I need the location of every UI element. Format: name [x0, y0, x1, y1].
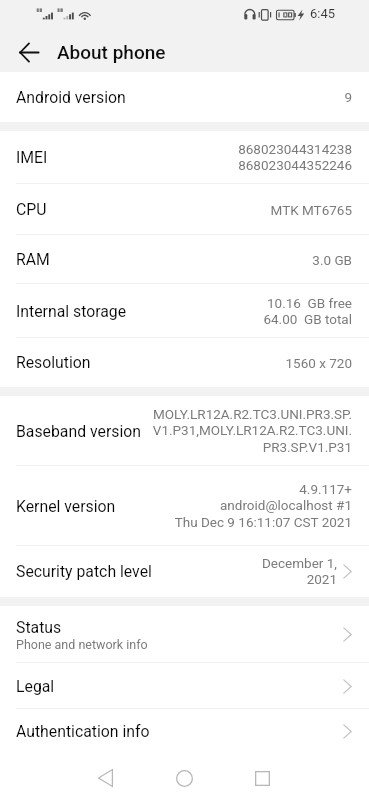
staticText: Kernel version: [16, 497, 116, 516]
button[interactable]: Android version: [0, 72, 369, 122]
staticText: 10.16 GB free 64.00 GB total: [263, 295, 352, 328]
staticText: Status: [16, 618, 62, 637]
staticText: 3.0 GB: [312, 252, 352, 268]
button[interactable]: Kernel version: [0, 466, 369, 546]
button[interactable]: Status: [0, 606, 369, 663]
button[interactable]: RAM: [0, 235, 369, 284]
staticText: RAM: [16, 250, 50, 269]
button[interactable]: Back: [6, 29, 52, 75]
staticText: 1560 x 720: [285, 355, 352, 371]
staticText: CPU: [16, 200, 47, 219]
staticText: Legal: [16, 677, 55, 696]
staticText: Security patch level: [16, 562, 152, 581]
staticText: Internal storage: [16, 302, 127, 321]
staticText: Authentication info: [16, 722, 150, 741]
staticText: MTK MT6765: [270, 202, 352, 218]
staticText: Android version: [16, 88, 126, 107]
staticText: 868023044314238 868023044352246: [238, 141, 352, 174]
button[interactable]: IMEI: [0, 131, 369, 184]
staticText: 4.9.117+ android@localhost #1 Thu Dec 9 …: [174, 481, 352, 531]
button[interactable]: Internal storage: [0, 284, 369, 338]
button[interactable]: Legal: [0, 663, 369, 709]
staticText: IMEI: [16, 148, 48, 167]
button[interactable]: Recents: [239, 755, 286, 800]
staticText: About phone: [57, 41, 166, 63]
button[interactable]: Authentication info: [0, 709, 369, 754]
button[interactable]: Security patch level: [0, 546, 369, 597]
staticText: December 1, 2021: [262, 555, 337, 588]
button[interactable]: Resolution: [0, 338, 369, 387]
staticText: 9: [344, 89, 352, 105]
staticText: Resolution: [16, 353, 91, 372]
staticText: MOLY.LR12A.R2.TC3.UNI.PR3.SP. V1.P31,MOL…: [152, 406, 352, 456]
button[interactable]: Back: [82, 755, 129, 800]
staticText: Baseband version: [16, 422, 141, 441]
button[interactable]: Home: [161, 755, 208, 800]
staticText: 6:45: [310, 6, 336, 21]
button[interactable]: CPU: [0, 184, 369, 235]
staticText: Phone and network info: [16, 637, 148, 652]
button[interactable]: Baseband version: [0, 396, 369, 466]
